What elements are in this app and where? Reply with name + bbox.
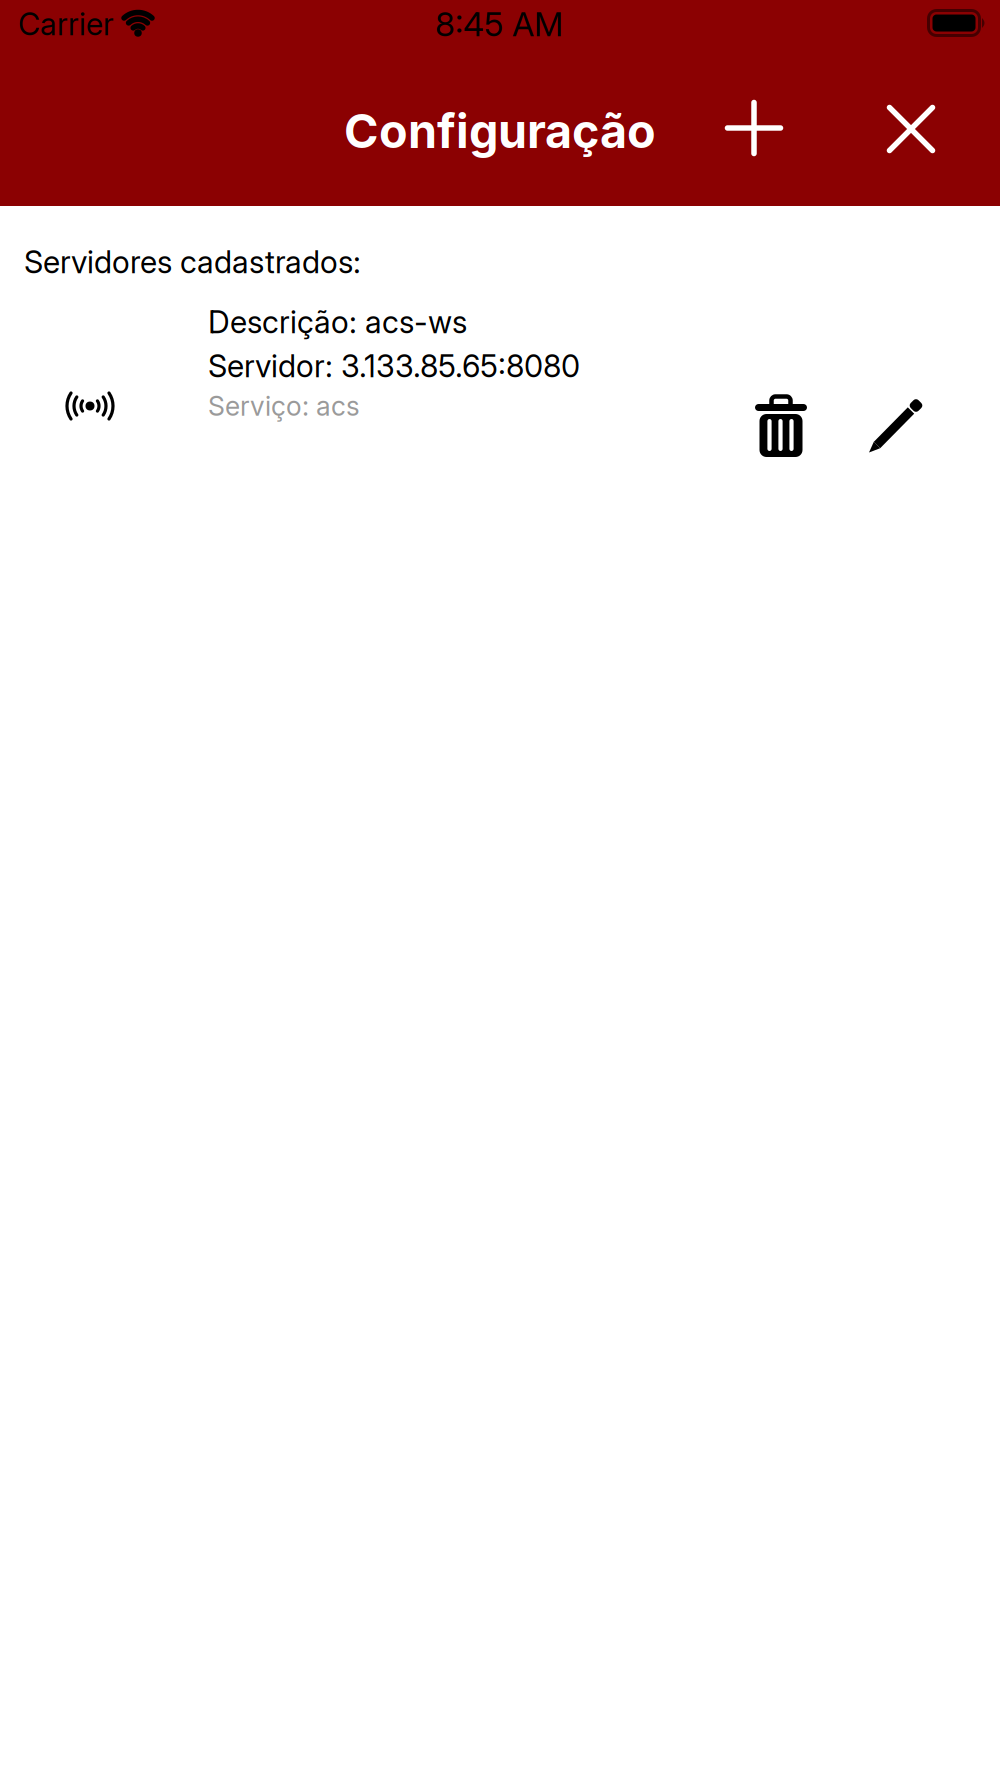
staticText: Servidores cadastrados:: [24, 244, 361, 280]
staticText: 8:45 AM: [435, 4, 563, 44]
button[interactable]: Edit: [867, 399, 923, 455]
staticText: Serviço: acs: [208, 390, 360, 422]
button[interactable]: Close: [889, 107, 932, 150]
button[interactable]: Add: [727, 102, 780, 153]
staticText: Descrição: acs-ws: [208, 304, 467, 340]
staticText: Configuração: [344, 103, 656, 159]
staticText: Servidor: 3.133.85.65:8080: [208, 348, 580, 384]
button[interactable]: Delete: [755, 396, 807, 458]
staticText: Carrier: [18, 6, 114, 42]
